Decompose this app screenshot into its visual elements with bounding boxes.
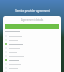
button[interactable] — [3, 54, 61, 58]
button[interactable] — [3, 34, 61, 38]
button[interactable] — [3, 62, 61, 66]
button[interactable] — [3, 46, 61, 50]
staticText: Agreement details — [21, 18, 44, 22]
staticText: Service provider agreement — [15, 9, 50, 13]
button[interactable] — [3, 38, 61, 42]
button[interactable] — [3, 58, 61, 62]
button[interactable] — [3, 42, 61, 46]
button[interactable] — [3, 66, 61, 70]
button[interactable] — [3, 50, 61, 54]
